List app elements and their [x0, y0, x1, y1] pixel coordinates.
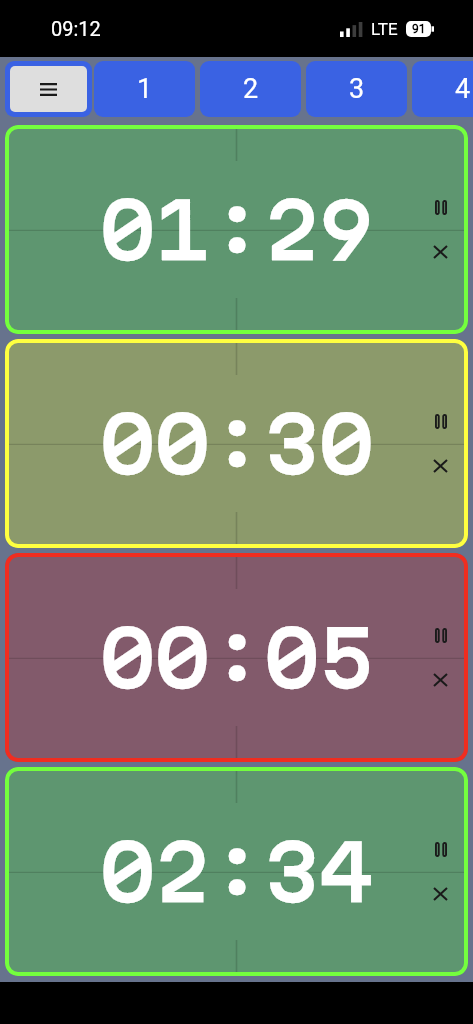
staticText: 09:12: [51, 17, 101, 40]
button[interactable]: 2: [200, 61, 301, 117]
button[interactable]: Close: [413, 658, 468, 702]
button[interactable]: Pause: [413, 613, 468, 658]
button[interactable]: 3: [306, 61, 407, 117]
staticText: 00:05: [100, 614, 374, 702]
staticText: 91: [412, 22, 426, 36]
staticText: 3: [349, 73, 365, 105]
staticText: 00:30: [100, 400, 374, 488]
button[interactable]: 4: [412, 61, 473, 117]
staticText: 01:29: [100, 186, 374, 274]
staticText: 1: [137, 73, 153, 105]
button[interactable]: 01:29: [5, 125, 468, 334]
staticText: 02:34: [100, 828, 374, 916]
button[interactable]: 00:30: [5, 339, 468, 548]
button[interactable]: Menu: [5, 61, 92, 117]
button[interactable]: 00:05: [5, 553, 468, 762]
button[interactable]: 1: [94, 61, 195, 117]
button[interactable]: Pause: [413, 399, 468, 444]
staticText: LTE: [371, 19, 398, 39]
button[interactable]: Pause: [413, 185, 468, 230]
button[interactable]: Close: [413, 444, 468, 488]
staticText: 2: [243, 73, 259, 105]
button[interactable]: 02:34: [5, 767, 468, 976]
button[interactable]: Pause: [413, 827, 468, 872]
button[interactable]: Close: [413, 872, 468, 916]
button[interactable]: Close: [413, 230, 468, 274]
staticText: 4: [455, 73, 471, 105]
